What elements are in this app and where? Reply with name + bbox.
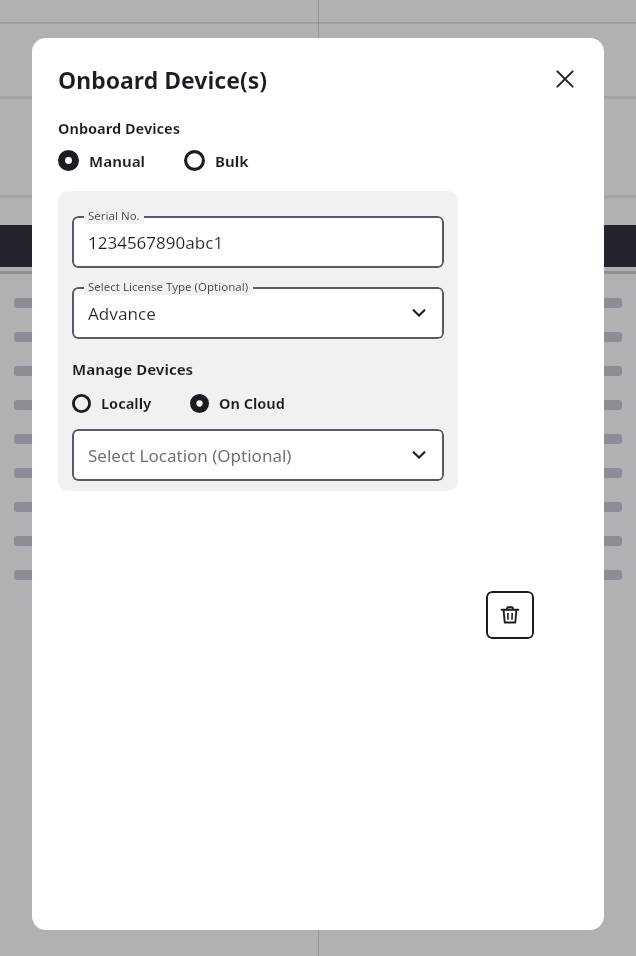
staticText: On Cloud (219, 393, 285, 413)
button[interactable]: Close (548, 62, 582, 96)
button[interactable]: Manual (58, 148, 146, 173)
staticText: Locally (101, 393, 152, 413)
staticText: Manual (89, 151, 146, 171)
button[interactable]: On Cloud (190, 391, 285, 415)
staticText: 1234567890abc1 (88, 231, 428, 254)
staticText: Select Location (Optional) (88, 444, 410, 467)
staticText: Manage Devices (72, 359, 194, 379)
staticText: Advance (88, 302, 410, 325)
staticText: Onboard Devices (58, 118, 180, 138)
button[interactable]: Delete device (486, 591, 534, 639)
staticText: Serial No. (88, 208, 140, 224)
staticText: Bulk (215, 151, 249, 171)
button[interactable]: Locally (72, 391, 152, 415)
button[interactable]: Select Location (Optional) (72, 429, 444, 481)
staticText: Select License Type (Optional) (88, 279, 249, 295)
button[interactable]: Bulk (184, 148, 249, 173)
button[interactable] (72, 287, 444, 339)
staticText: Onboard Device(s) (58, 64, 548, 95)
button[interactable] (72, 216, 444, 268)
